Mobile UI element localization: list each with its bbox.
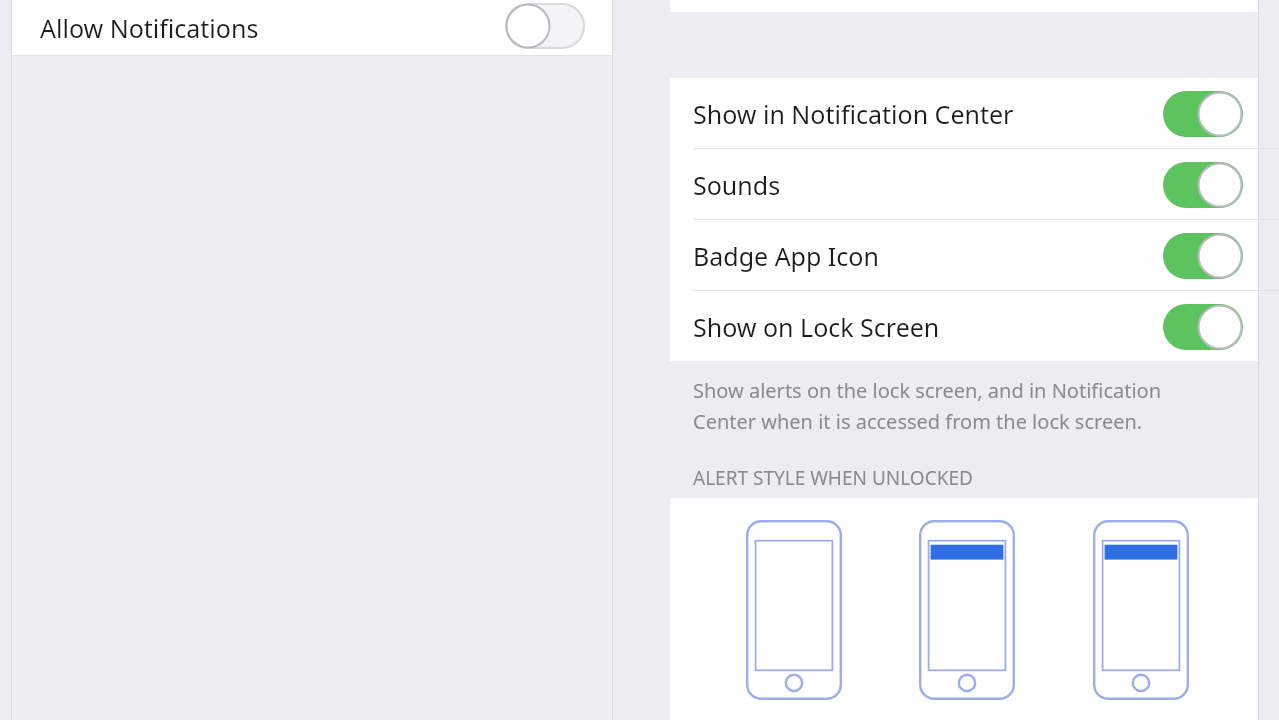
button[interactable]: Show in Notification Center toggle, on [1163, 91, 1243, 137]
button[interactable]: Sounds toggle, on [1163, 162, 1243, 208]
button[interactable]: Show on Lock Screen toggle, on [1163, 304, 1243, 350]
staticText: Sounds [693, 168, 781, 202]
button[interactable]: Sounds [670, 149, 1258, 220]
button[interactable]: Show on Lock Screen [670, 291, 1258, 362]
button[interactable]: Alert style Banners [919, 498, 1015, 678]
button[interactable]: Show in Notification Center [670, 78, 1258, 149]
button[interactable]: Badge App Icon toggle, on [1163, 233, 1243, 279]
button[interactable]: Badge App Icon [670, 220, 1258, 291]
staticText: Center when it is accessed from the lock… [693, 408, 1143, 435]
staticText: Show on Lock Screen [693, 310, 940, 344]
button[interactable]: Alert style Alerts [1093, 498, 1189, 678]
staticText: Show in Notification Center [693, 97, 1014, 131]
button[interactable]: Alert style None [746, 498, 842, 678]
button[interactable]: Allow Notifications toggle, off [505, 3, 585, 49]
staticText: ALERT STYLE WHEN UNLOCKED [693, 465, 973, 491]
staticText: Badge App Icon [693, 239, 879, 273]
staticText: Show alerts on the lock screen, and in N… [693, 377, 1162, 404]
button[interactable]: Allow Notifications [12, 0, 613, 55]
staticText: Allow Notifications [40, 11, 259, 45]
